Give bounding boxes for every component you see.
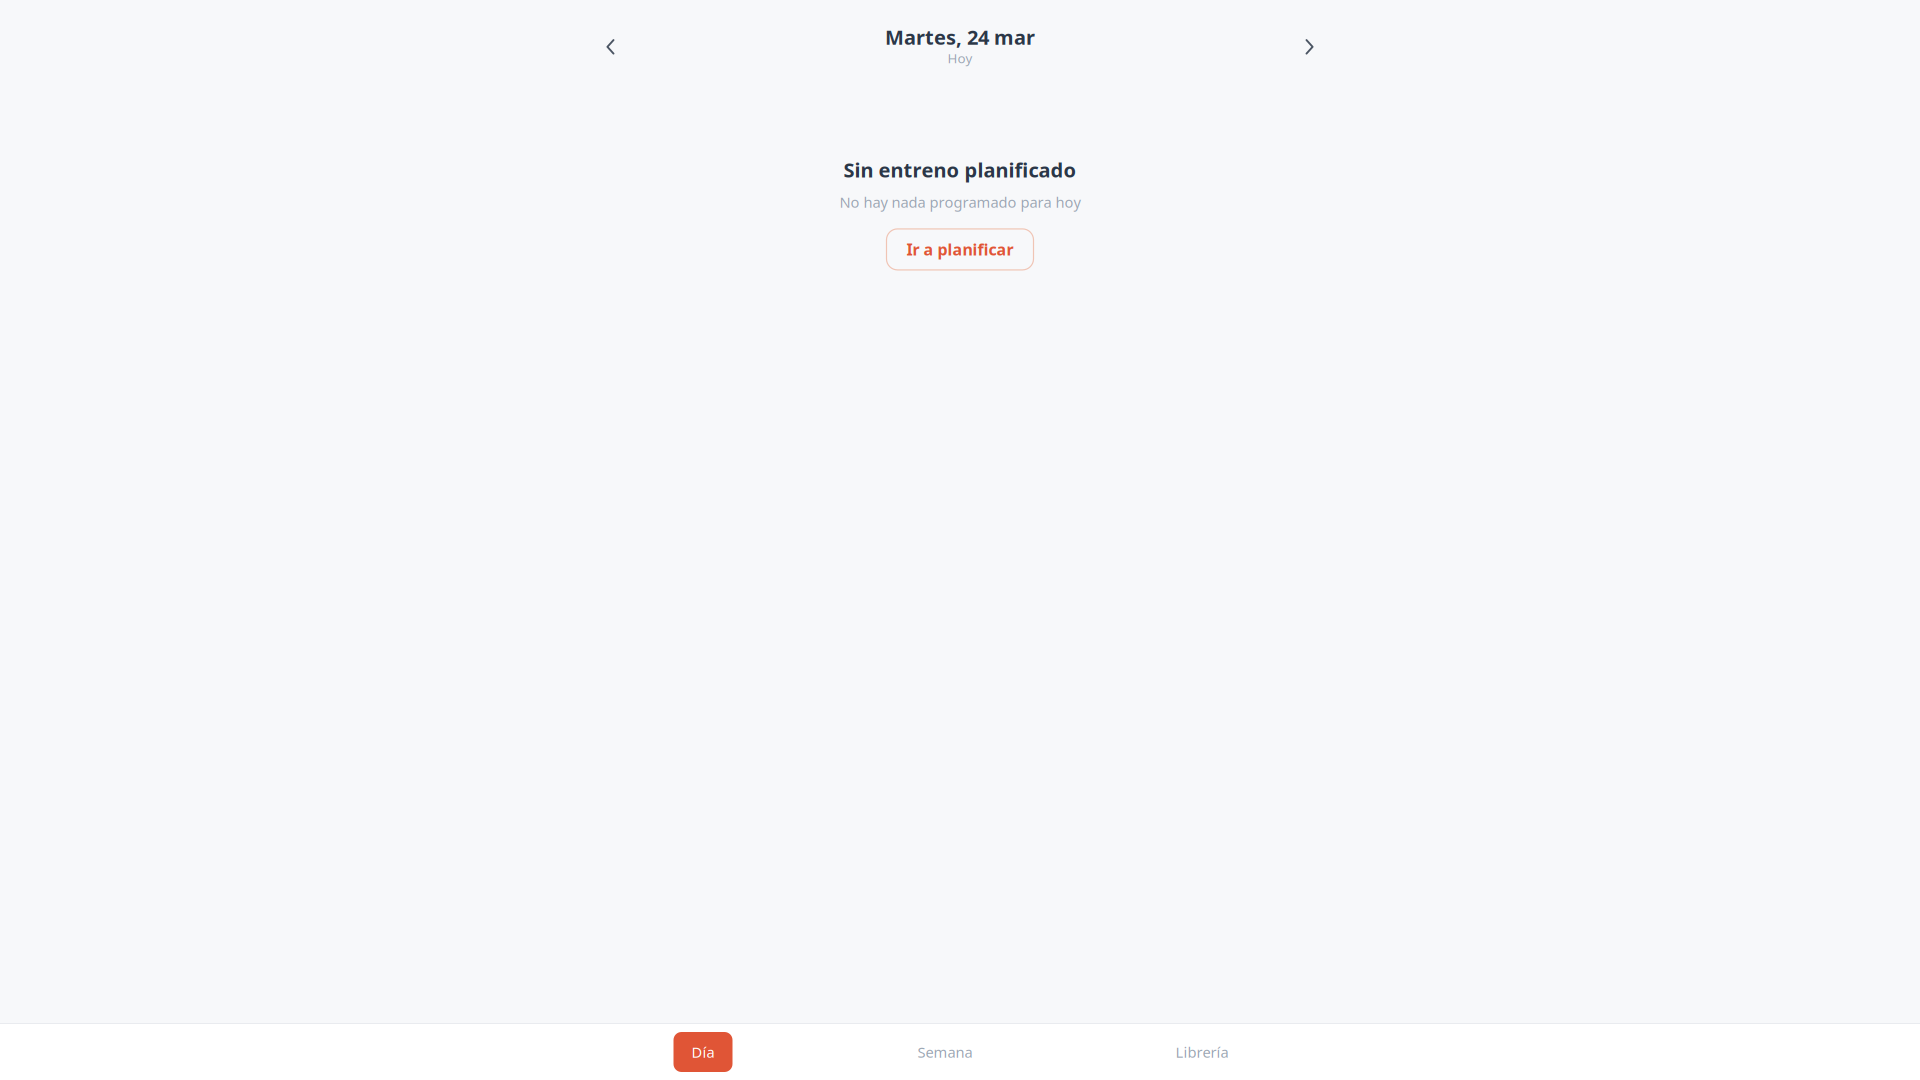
staticText: No hay nada programado para hoy xyxy=(839,192,1080,212)
staticText: Sin entreno planificado xyxy=(843,156,1076,183)
staticText: Ir a planificar xyxy=(906,239,1013,260)
staticText: Martes, 24 mar xyxy=(885,24,1035,50)
button[interactable]: Día anterior xyxy=(596,31,624,59)
button[interactable]: Librería xyxy=(1157,1032,1246,1072)
staticText: Librería xyxy=(1175,1042,1228,1062)
button[interactable]: Día siguiente xyxy=(1296,31,1324,59)
staticText: Semana xyxy=(917,1042,972,1062)
button[interactable]: Semana xyxy=(899,1032,990,1072)
button[interactable]: Día xyxy=(673,1032,732,1072)
staticText: Día xyxy=(691,1042,714,1062)
button[interactable]: Ir a planificar xyxy=(886,229,1033,270)
staticText: Hoy xyxy=(947,49,972,67)
